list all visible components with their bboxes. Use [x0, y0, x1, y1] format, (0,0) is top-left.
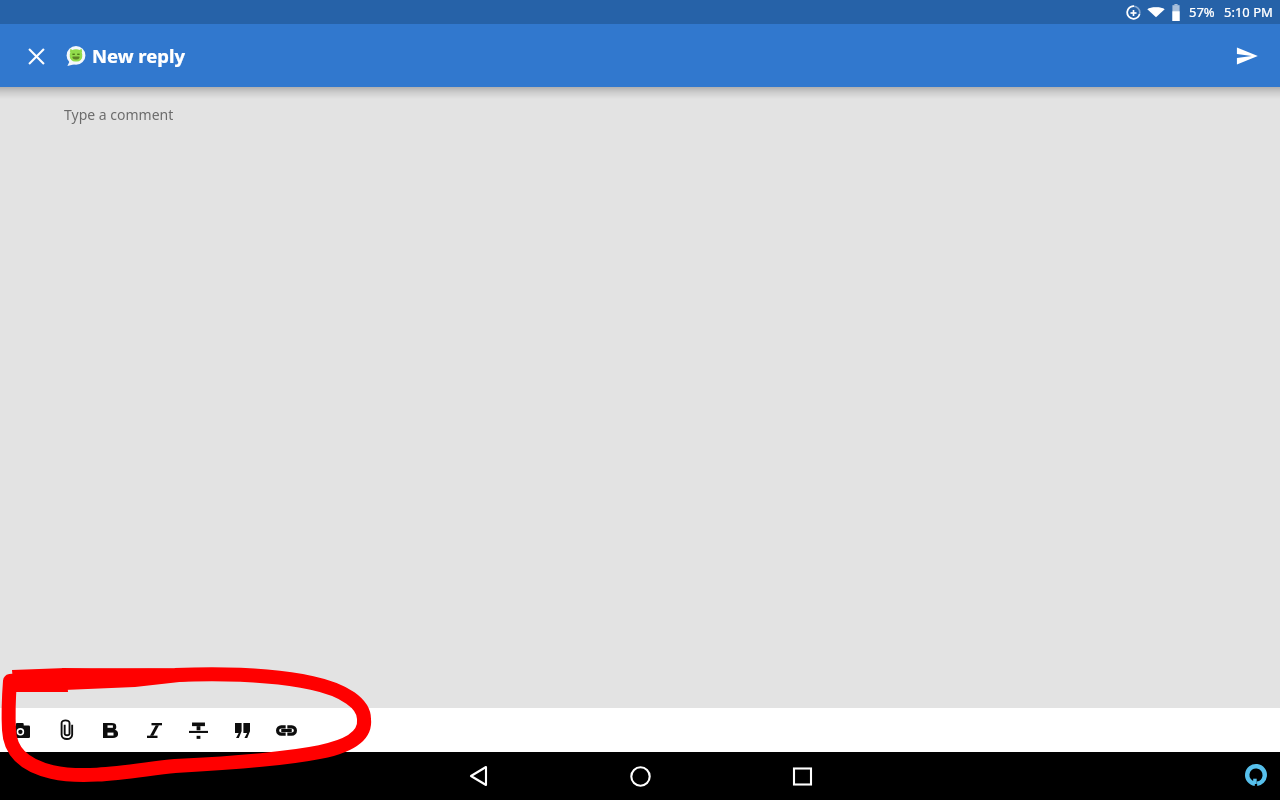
staticText: 57% [1189, 3, 1215, 21]
button[interactable]: Recents [778, 752, 826, 800]
staticText: 5:10 PM [1224, 3, 1273, 21]
staticText: Type a comment [64, 105, 174, 124]
button[interactable]: Strikethrough [176, 708, 220, 752]
button[interactable]: Assistant [1233, 752, 1279, 798]
button[interactable]: Italic [132, 708, 176, 752]
button[interactable]: Home [616, 752, 664, 800]
button[interactable]: Insert link [264, 708, 308, 752]
button[interactable]: Insert photo [0, 708, 44, 752]
button[interactable]: Attach file [44, 708, 88, 752]
button[interactable]: Back [454, 752, 502, 800]
staticText: New reply [92, 43, 186, 68]
button[interactable]: Close [12, 32, 60, 80]
button[interactable]: Send [1223, 32, 1271, 80]
button[interactable]: Quote [220, 708, 264, 752]
button[interactable]: Type a comment [0, 87, 1280, 708]
button[interactable]: Bold [88, 708, 132, 752]
